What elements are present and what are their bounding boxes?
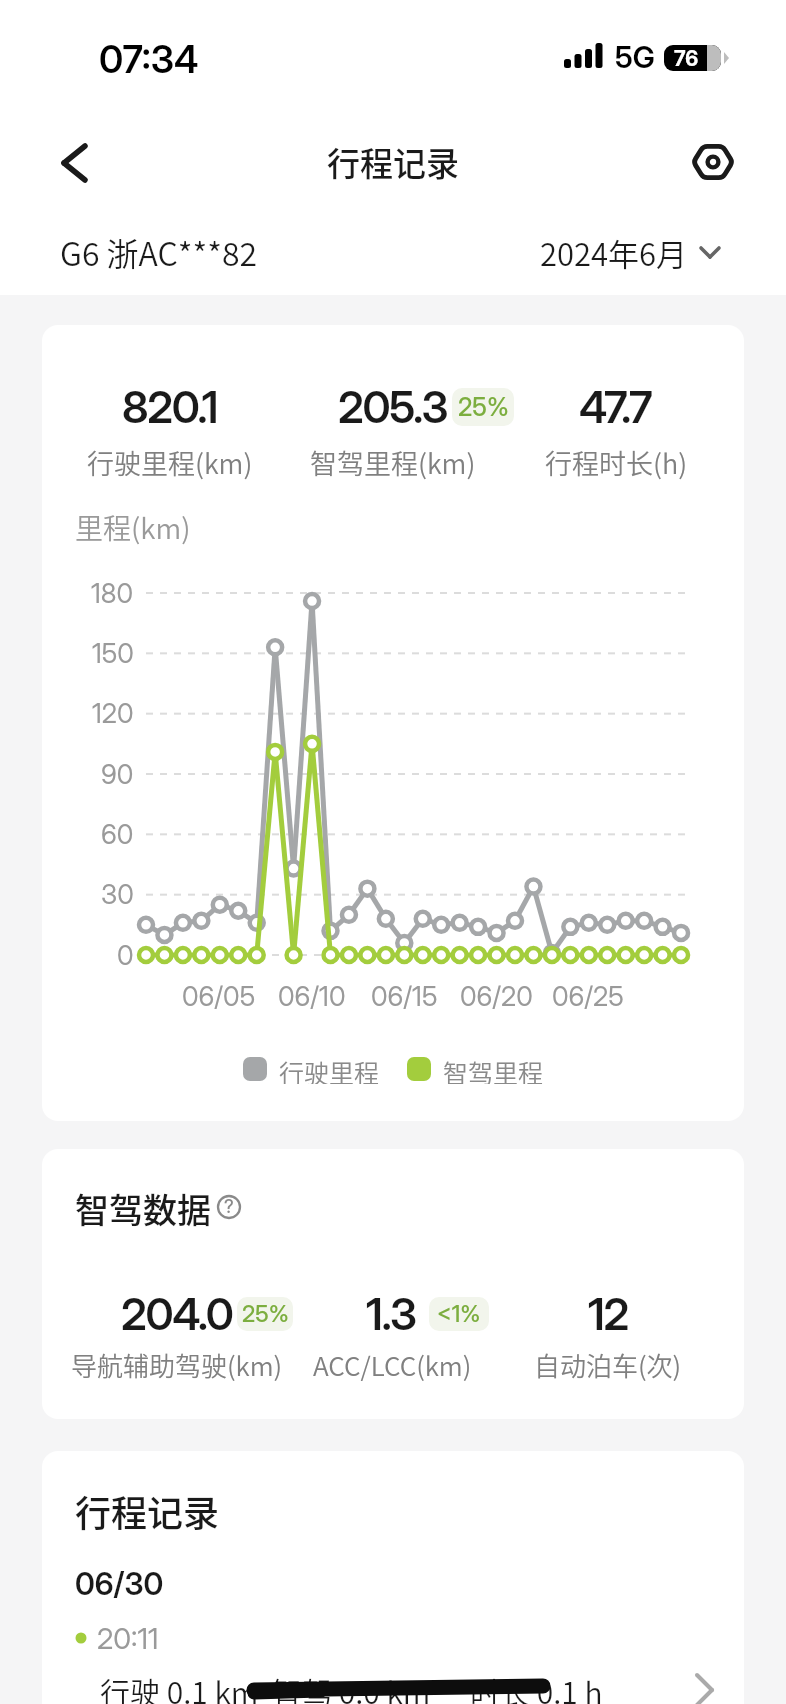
staticText: 智驾 0.0 km — [272, 1669, 431, 1704]
staticText: ? — [224, 1196, 234, 1218]
staticText: 76 — [674, 46, 699, 71]
staticText: 07:34 — [99, 36, 199, 82]
staticText: 2024年6月 — [540, 230, 688, 275]
staticText: 06/05 — [182, 980, 256, 1013]
staticText: 行驶 0.1 km — [100, 1669, 259, 1704]
staticText: 820.1 — [122, 380, 218, 433]
staticText: 里程(km) — [75, 507, 191, 548]
staticText: 06/20 — [460, 980, 533, 1013]
staticText: 行驶里程 — [279, 1054, 380, 1084]
staticText: 1.3 — [366, 1287, 416, 1340]
staticText: 0 — [117, 939, 134, 972]
staticText: 06/30 — [75, 1565, 164, 1603]
staticText: 47.7 — [579, 380, 652, 433]
staticText: 120 — [92, 697, 134, 730]
staticText: 60 — [101, 818, 134, 851]
staticText: 205.3 — [338, 380, 448, 433]
staticText: 25% — [242, 1300, 289, 1328]
staticText: 12 — [588, 1287, 628, 1340]
staticText: 行驶里程(km) — [87, 443, 253, 482]
staticText: ACC/LCC(km) — [313, 1346, 472, 1384]
staticText: 06/25 — [552, 980, 624, 1013]
staticText: 204.0 — [121, 1287, 233, 1340]
staticText: 25% — [458, 392, 509, 422]
staticText: 06/15 — [371, 980, 438, 1013]
staticText: 行程记录 — [327, 138, 459, 186]
staticText: 智驾里程(km) — [310, 443, 476, 482]
staticText: 行程记录 — [75, 1485, 220, 1537]
staticText: 时长 0.1 h — [470, 1669, 603, 1704]
staticText: 5G — [615, 39, 655, 75]
staticText: 智驾数据 — [75, 1184, 211, 1233]
staticText: 智驾里程 — [443, 1054, 544, 1084]
staticText: 自动泊车(次) — [534, 1346, 682, 1384]
staticText: 行程时长(h) — [545, 443, 688, 482]
staticText: 180 — [91, 577, 134, 610]
staticText: 06/10 — [278, 980, 346, 1013]
staticText: G6 浙AC***82 — [60, 229, 258, 275]
staticText: 20:11 — [97, 1621, 159, 1656]
staticText: 30 — [101, 878, 134, 911]
staticText: <1% — [437, 1300, 481, 1328]
staticText: 导航辅助驾驶(km) — [71, 1346, 283, 1384]
staticText: 150 — [92, 637, 134, 670]
staticText: 90 — [101, 758, 134, 791]
